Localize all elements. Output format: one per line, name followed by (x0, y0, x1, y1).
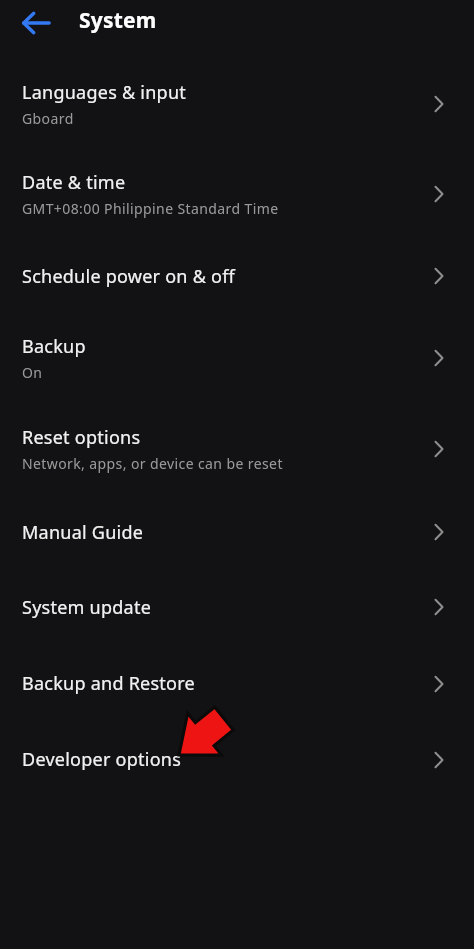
button[interactable]: Schedule power on & off (0, 239, 474, 313)
staticText: Backup (22, 334, 86, 359)
staticText: Schedule power on & off (22, 264, 236, 289)
staticText: System update (22, 595, 152, 620)
button[interactable]: System update (0, 569, 474, 645)
staticText: On (22, 363, 43, 382)
staticText: Manual Guide (22, 520, 144, 545)
staticText: Network, apps, or device can be reset (22, 454, 283, 473)
button[interactable]: Manual Guide (0, 495, 474, 569)
staticText: Gboard (22, 109, 74, 128)
staticText: Backup and Restore (22, 671, 195, 696)
button[interactable]: Reset options (0, 403, 474, 495)
staticText: System (79, 6, 157, 35)
staticText: GMT+08:00 Philippine Standard Time (22, 199, 279, 218)
staticText: Date & time (22, 170, 126, 195)
button[interactable]: Developer options (0, 722, 474, 797)
button[interactable]: Backup and Restore (0, 645, 474, 722)
staticText: Languages & input (22, 80, 187, 105)
staticText: Developer options (22, 747, 182, 772)
button[interactable]: Languages & input (0, 59, 474, 149)
button[interactable] (21, 8, 51, 38)
button[interactable]: Date & time (0, 149, 474, 239)
button[interactable]: Backup (0, 313, 474, 403)
staticText: Reset options (22, 425, 141, 450)
